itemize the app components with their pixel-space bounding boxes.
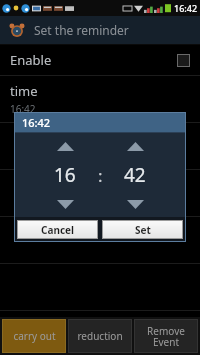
staticText: Set the reminder: [34, 22, 129, 38]
button[interactable]: Increment: [122, 139, 148, 153]
staticText: carry out: [13, 329, 56, 343]
button[interactable]: time: [0, 76, 200, 122]
button[interactable]: [0, 217, 200, 263]
button[interactable]: [0, 311, 200, 355]
button[interactable]: Cancel: [17, 220, 98, 239]
button[interactable]: Increment: [52, 139, 78, 153]
staticText: 16: [54, 162, 76, 188]
button[interactable]: Decrement: [52, 197, 78, 211]
staticText: :: [98, 164, 103, 187]
button[interactable]: Decrement: [122, 197, 148, 211]
button[interactable]: reduction: [68, 319, 132, 353]
staticText: [10, 317, 14, 335]
staticText: Set: [135, 223, 151, 237]
staticText: 16:42: [174, 2, 198, 14]
staticText: 42: [124, 162, 146, 188]
staticText: reduction: [77, 329, 123, 343]
staticText: Cancel: [41, 223, 75, 237]
staticText: Remove Event: [147, 324, 185, 349]
button[interactable]: Set: [102, 220, 183, 239]
button[interactable]: carry out: [2, 319, 66, 353]
button[interactable]: Remove Event: [134, 319, 198, 353]
staticText: 16:42: [10, 102, 36, 116]
button[interactable]: Enable: [0, 45, 200, 75]
staticText: Enable: [10, 51, 52, 69]
button[interactable]: [0, 123, 200, 169]
staticText: time: [10, 82, 38, 100]
staticText: 16:42: [22, 115, 51, 130]
button[interactable]: [0, 170, 200, 216]
